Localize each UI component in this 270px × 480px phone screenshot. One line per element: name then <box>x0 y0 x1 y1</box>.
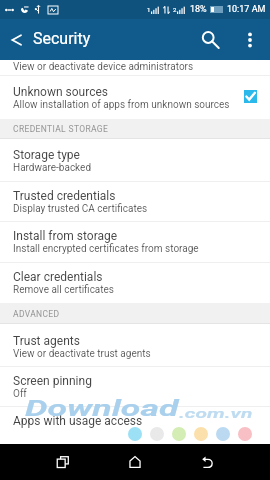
staticText: CREDENTIAL STORAGE <box>13 124 109 134</box>
staticText: Apps with usage access <box>13 414 143 428</box>
button[interactable]: Recent apps <box>48 447 78 477</box>
button[interactable]: Navigate up <box>0 25 30 55</box>
staticText: 2 <box>173 6 177 13</box>
staticText: Install from storage <box>13 229 118 243</box>
staticText: Hardware-backed <box>13 162 92 174</box>
staticText: Unknown sources <box>13 85 109 99</box>
button[interactable]: Install from storage <box>0 222 270 262</box>
button[interactable]: Trusted credentials <box>0 182 270 221</box>
button[interactable]: Trust agents <box>0 324 270 366</box>
button[interactable]: Clear credentials <box>0 263 270 303</box>
button[interactable]: More options <box>237 27 263 53</box>
button[interactable]: View or deactivate device administrators <box>0 60 270 75</box>
staticText: Security <box>33 29 91 48</box>
staticText: ADVANCED <box>13 309 60 319</box>
button[interactable]: Unknown sources checkbox <box>244 90 257 103</box>
staticText: Screen pinning <box>13 374 92 388</box>
staticText: 10:17 AM <box>227 4 266 15</box>
button[interactable]: Storage type <box>0 139 270 181</box>
staticText: Storage type <box>13 148 80 162</box>
staticText: Download <box>25 396 179 422</box>
staticText: .com.vn <box>179 406 253 421</box>
staticText: Remove all certificates <box>13 284 115 296</box>
button[interactable]: Home <box>120 447 150 477</box>
staticText: Display trusted CA certificates <box>13 203 148 215</box>
staticText: View or deactivate trust agents <box>13 348 151 360</box>
staticText: Install encrypted certificates from stor… <box>13 243 199 255</box>
button[interactable]: Apps with usage access <box>0 407 270 431</box>
staticText: Trusted credentials <box>13 189 116 203</box>
button[interactable]: Back <box>192 447 222 477</box>
button[interactable]: Unknown sources <box>0 76 270 119</box>
staticText: Off <box>13 388 27 400</box>
button[interactable]: Screen pinning <box>0 367 270 406</box>
staticText: Allow installation of apps from unknown … <box>13 99 230 111</box>
button[interactable]: Search <box>197 27 223 53</box>
staticText: 1 <box>147 6 151 13</box>
staticText: Trust agents <box>13 334 80 348</box>
staticText: Clear credentials <box>13 270 103 284</box>
staticText: 18% <box>190 4 207 15</box>
staticText: View or deactivate device administrators <box>13 61 194 73</box>
